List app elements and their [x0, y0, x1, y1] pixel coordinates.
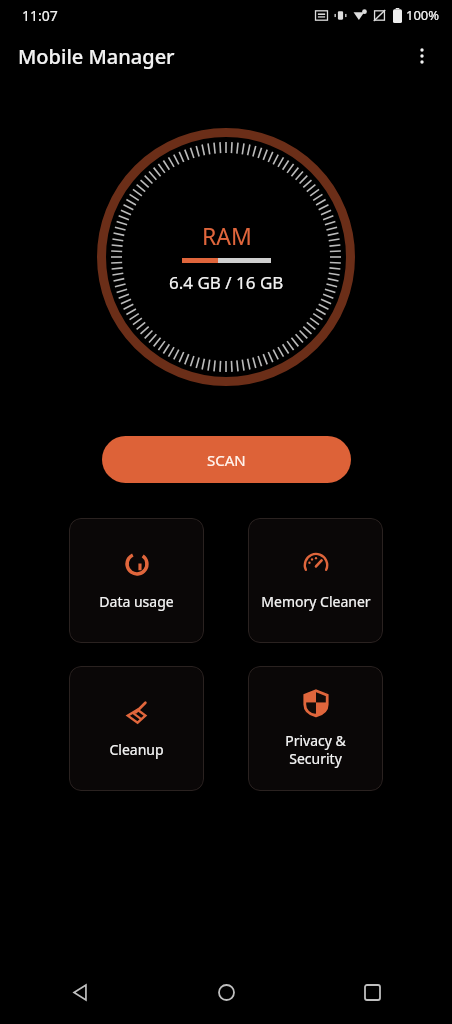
staticText: 11:07 [22, 6, 58, 25]
button[interactable]: Privacy & Security [248, 666, 383, 791]
button[interactable]: More options [400, 34, 444, 78]
staticText: 6.4 GB / 16 GB [169, 271, 284, 294]
button[interactable]: SCAN [102, 436, 351, 483]
button[interactable]: Memory Cleaner [248, 518, 383, 643]
button[interactable]: Back [56, 968, 104, 1016]
staticText: Data usage [99, 592, 174, 611]
staticText: Memory Cleaner [261, 592, 371, 611]
button[interactable]: Data usage [69, 518, 204, 643]
staticText: Cleanup [109, 740, 164, 759]
staticText: 100% [406, 6, 440, 24]
staticText: SCAN [207, 450, 246, 470]
staticText: Mobile Manager [18, 43, 175, 70]
staticText: RAM [202, 220, 252, 251]
button[interactable]: Home [202, 968, 250, 1016]
button[interactable]: Cleanup [69, 666, 204, 791]
staticText: Privacy & Security [285, 731, 346, 768]
button[interactable]: Recent apps [348, 968, 396, 1016]
